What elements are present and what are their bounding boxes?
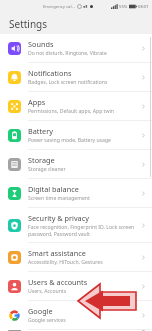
staticText: Accessibility, HiTouch, Gestures [28,259,103,266]
other: Open Users & accounts [140,283,147,290]
button[interactable]: Security & privacy [0,208,152,242]
staticText: Digital balance [28,184,79,194]
button[interactable]: Users & accounts [0,272,152,300]
staticText: Smart assistance [28,248,86,258]
button[interactable]: Google [0,301,152,329]
button[interactable]: Smart assistance [0,243,152,271]
staticText: Face recognition, Fingerprint ID, Lock s… [28,224,138,238]
staticText: Do not disturb, Ringtone, Vibrate [28,50,107,57]
staticText: Permissions, Default apps, App twin [28,108,114,115]
other: Open Smart assistance [140,254,147,261]
button[interactable]: Sounds [0,34,152,62]
button[interactable]: Storage [0,150,152,178]
staticText: Apps [28,97,46,107]
other: Open Apps [140,103,147,110]
other: Open Notifications [140,74,147,81]
staticText: Settings [9,17,48,31]
staticText: 55% [119,4,128,10]
other: Open Battery [140,132,147,139]
staticText: Sounds [28,39,54,49]
other: Open Google [140,312,147,319]
button[interactable]: System [0,330,152,331]
button[interactable]: Notifications [0,63,152,91]
button[interactable]: Apps [0,92,152,120]
staticText: 08:01 [138,4,149,10]
staticText: Notifications [28,68,72,78]
staticText: Google [28,306,53,316]
staticText: Storage [28,155,55,165]
staticText: Power saving mode, Battery usage [28,137,111,144]
staticText: Security & privacy [28,213,89,223]
other: Open Security & privacy [140,222,147,229]
button[interactable]: Battery [0,121,152,149]
staticText: Users & accounts [28,277,88,287]
staticText: Storage cleaner [28,166,66,173]
staticText: Google services [28,317,66,324]
staticText: Battery [28,126,53,136]
other: Open Sounds [140,45,147,52]
other: Open System [140,330,147,331]
other: Open Digital balance [140,190,147,197]
staticText: Screen time management [28,195,90,202]
staticText: Emergency cal... [43,4,75,10]
other: Open Storage [140,161,147,168]
button[interactable]: Digital balance [0,179,152,207]
staticText: Badges, Lock screen notifications [28,79,108,86]
staticText: Users, Accounts [28,288,67,295]
